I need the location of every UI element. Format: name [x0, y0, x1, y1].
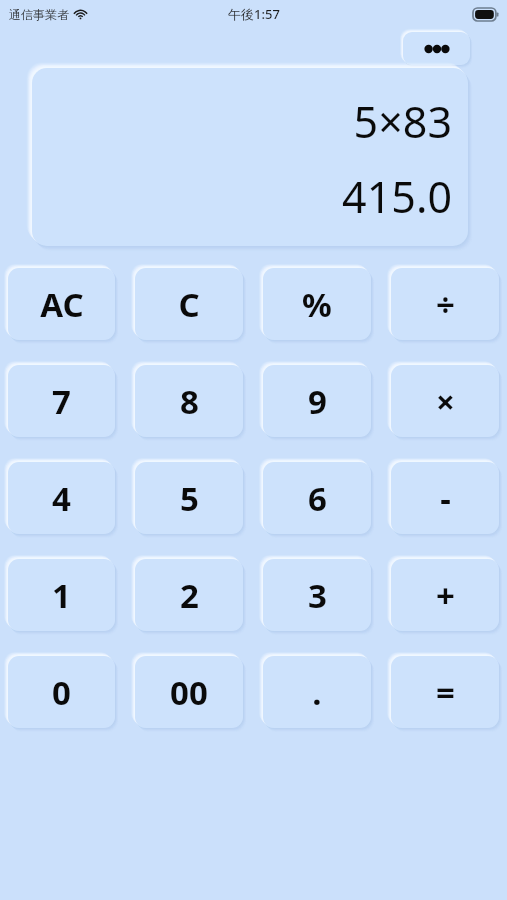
button[interactable]: 3 — [263, 559, 371, 631]
button[interactable]: 8 — [135, 365, 243, 437]
button[interactable]: + — [391, 559, 499, 631]
staticText: AC — [40, 282, 84, 327]
staticText: 7 — [52, 379, 71, 424]
staticText: 8 — [180, 379, 199, 424]
staticText: 通信事業者 — [9, 7, 69, 22]
staticText: 00 — [170, 670, 208, 715]
staticText: 5 — [180, 476, 199, 521]
button[interactable]: 0 — [8, 656, 115, 728]
button[interactable]: 1 — [8, 559, 115, 631]
button[interactable]: . — [263, 656, 371, 728]
button[interactable]: 00 — [135, 656, 243, 728]
staticText: 9 — [308, 379, 327, 424]
button[interactable]: AC — [8, 268, 115, 340]
button[interactable]: 4 — [8, 462, 115, 534]
staticText: = — [436, 670, 455, 715]
button[interactable]: - — [391, 462, 499, 534]
button[interactable]: % — [263, 268, 371, 340]
staticText: ÷ — [436, 282, 455, 327]
button[interactable]: C — [135, 268, 243, 340]
staticText: 415.0 — [342, 167, 452, 226]
staticText: . — [312, 670, 322, 715]
staticText: C — [178, 282, 200, 327]
staticText: 0 — [52, 670, 71, 715]
staticText: - — [440, 476, 451, 521]
staticText: 1 — [52, 573, 71, 618]
staticText: % — [302, 282, 332, 327]
button[interactable]: More options — [403, 32, 470, 65]
button[interactable]: 6 — [263, 462, 371, 534]
staticText: + — [436, 573, 455, 618]
staticText: × — [436, 379, 455, 424]
staticText: 2 — [180, 573, 199, 618]
button[interactable]: 7 — [8, 365, 115, 437]
button[interactable]: = — [391, 656, 499, 728]
button[interactable]: 9 — [263, 365, 371, 437]
button[interactable]: 2 — [135, 559, 243, 631]
staticText: 6 — [308, 476, 327, 521]
button[interactable]: ÷ — [391, 268, 499, 340]
staticText: 4 — [52, 476, 71, 521]
button[interactable]: × — [391, 365, 499, 437]
staticText: 午後1:57 — [228, 5, 280, 23]
button[interactable]: 5 — [135, 462, 243, 534]
staticText: 5×83 — [353, 92, 452, 151]
staticText: 3 — [308, 573, 327, 618]
